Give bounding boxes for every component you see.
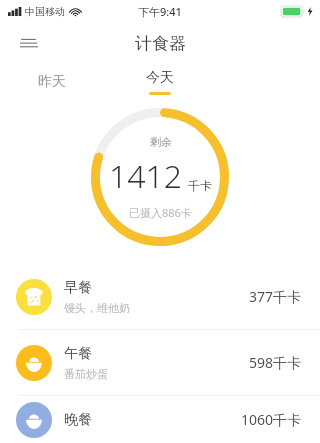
- staticText: 午餐: [64, 345, 92, 363]
- button[interactable]: 昨天: [26, 64, 78, 100]
- staticText: 晚餐: [64, 411, 92, 429]
- button[interactable]: 早餐: [0, 264, 320, 329]
- staticText: 馒头，维他奶: [64, 301, 130, 315]
- staticText: 早餐: [64, 279, 92, 297]
- staticText: 377千卡: [249, 287, 302, 306]
- staticText: 昨天: [38, 73, 66, 91]
- staticText: 下午9:41: [138, 4, 182, 19]
- staticText: 计食器: [135, 33, 186, 54]
- staticText: 598千卡: [249, 353, 302, 372]
- staticText: 1060千卡: [241, 410, 302, 429]
- staticText: 千卡: [188, 178, 212, 193]
- button[interactable]: 晚餐: [0, 396, 320, 443]
- staticText: 剩余: [150, 135, 172, 149]
- staticText: 1412: [109, 154, 183, 198]
- staticText: 番茄炒蛋: [64, 367, 108, 381]
- button[interactable]: 今天: [134, 64, 186, 100]
- button[interactable]: Menu: [12, 26, 46, 60]
- staticText: 中国移动: [25, 5, 65, 18]
- staticText: 今天: [146, 69, 174, 87]
- staticText: 已摄入886卡: [129, 205, 192, 220]
- button[interactable]: 午餐: [0, 330, 320, 395]
